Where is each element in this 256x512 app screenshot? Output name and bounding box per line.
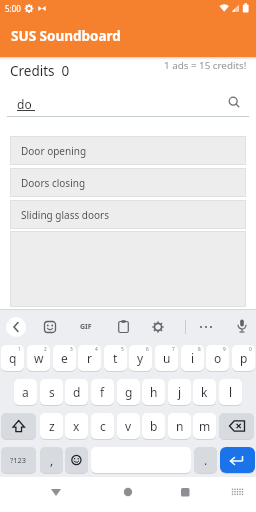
staticText: 5 xyxy=(121,346,124,353)
button[interactable]: x xyxy=(65,413,88,439)
staticText: 0 xyxy=(249,346,252,353)
button[interactable]: j xyxy=(168,379,191,405)
staticText: k xyxy=(201,384,208,400)
staticText: g xyxy=(125,384,133,400)
staticText: s xyxy=(49,384,55,400)
button[interactable]: w xyxy=(27,345,50,371)
button[interactable]: . xyxy=(194,447,217,473)
staticText: . xyxy=(204,452,208,468)
button[interactable] xyxy=(1,413,36,439)
staticText: GIF xyxy=(80,322,92,332)
staticText: do xyxy=(17,96,32,112)
button[interactable] xyxy=(40,480,72,508)
button[interactable]: ?123 xyxy=(1,447,36,473)
staticText: f xyxy=(100,384,105,400)
staticText: p xyxy=(240,350,248,366)
button[interactable] xyxy=(118,320,129,333)
button[interactable]: c xyxy=(91,413,114,439)
button[interactable]: h xyxy=(142,379,165,405)
staticText: 4 xyxy=(95,346,98,353)
button[interactable]: z xyxy=(40,413,63,439)
button[interactable]: i xyxy=(181,345,204,371)
staticText: t xyxy=(113,350,118,366)
button[interactable] xyxy=(199,325,213,329)
staticText: 2 xyxy=(44,346,47,353)
staticText: v xyxy=(125,418,132,434)
button[interactable]: Door opening xyxy=(10,136,246,165)
staticText: x xyxy=(73,418,80,434)
staticText: Sliding glass doors xyxy=(21,208,109,222)
staticText: r xyxy=(87,350,92,366)
button[interactable] xyxy=(220,447,255,473)
button[interactable] xyxy=(112,480,144,508)
staticText: 1 xyxy=(18,346,21,353)
button[interactable]: o xyxy=(206,345,229,371)
staticText: 7 xyxy=(172,346,175,353)
staticText: a xyxy=(22,384,29,400)
staticText: j xyxy=(178,384,182,400)
button[interactable]: l xyxy=(219,379,242,405)
staticText: q xyxy=(9,350,17,366)
button[interactable] xyxy=(237,319,247,334)
button[interactable]: s xyxy=(40,379,63,405)
staticText: 8 xyxy=(198,346,201,353)
button[interactable]: Sliding glass doors xyxy=(10,200,246,229)
staticText: 1 ads = 15 credits! xyxy=(164,59,247,72)
button[interactable]: b xyxy=(142,413,165,439)
staticText: e xyxy=(61,350,68,366)
button[interactable] xyxy=(169,480,201,508)
button[interactable]: r xyxy=(78,345,101,371)
button[interactable]: a xyxy=(14,379,37,405)
staticText: 6 xyxy=(146,346,149,353)
button[interactable] xyxy=(219,413,254,439)
staticText: , xyxy=(50,452,54,468)
button[interactable]: v xyxy=(117,413,140,439)
staticText: n xyxy=(176,418,184,434)
button[interactable]: y xyxy=(129,345,152,371)
button[interactable]: m xyxy=(193,413,216,439)
staticText: 5:00 xyxy=(5,3,21,14)
button[interactable]: u xyxy=(155,345,178,371)
staticText: l xyxy=(229,384,233,400)
button[interactable]: k xyxy=(193,379,216,405)
button[interactable]: q xyxy=(1,345,24,371)
staticText: Door opening xyxy=(21,144,87,158)
staticText: o xyxy=(214,350,222,366)
button[interactable] xyxy=(6,317,26,337)
button[interactable]: d xyxy=(65,379,88,405)
button[interactable]: n xyxy=(168,413,191,439)
button[interactable]: t xyxy=(104,345,127,371)
staticText: u xyxy=(163,350,171,366)
staticText: d xyxy=(73,384,81,400)
button[interactable]: , xyxy=(40,447,63,473)
staticText: b xyxy=(150,418,158,434)
staticText: ?123 xyxy=(10,455,27,465)
button[interactable]: f xyxy=(91,379,114,405)
staticText: i xyxy=(191,350,195,366)
staticText: c xyxy=(100,418,106,434)
staticText: m xyxy=(199,418,211,434)
button[interactable]: p xyxy=(232,345,255,371)
staticText: Doors closing xyxy=(21,176,86,190)
button[interactable]: g xyxy=(117,379,140,405)
staticText: 3 xyxy=(70,346,73,353)
staticText: w xyxy=(34,350,44,366)
button[interactable] xyxy=(152,321,164,333)
button[interactable]: Doors closing xyxy=(10,168,246,197)
button[interactable] xyxy=(65,447,88,473)
staticText: Credits 0 xyxy=(10,62,70,80)
staticText: z xyxy=(49,418,55,434)
button[interactable]: e xyxy=(53,345,76,371)
staticText: 9 xyxy=(223,346,226,353)
staticText: y xyxy=(137,350,144,366)
button[interactable] xyxy=(44,321,56,333)
staticText: h xyxy=(150,384,158,400)
staticText: SUS Soundboard xyxy=(11,27,121,45)
